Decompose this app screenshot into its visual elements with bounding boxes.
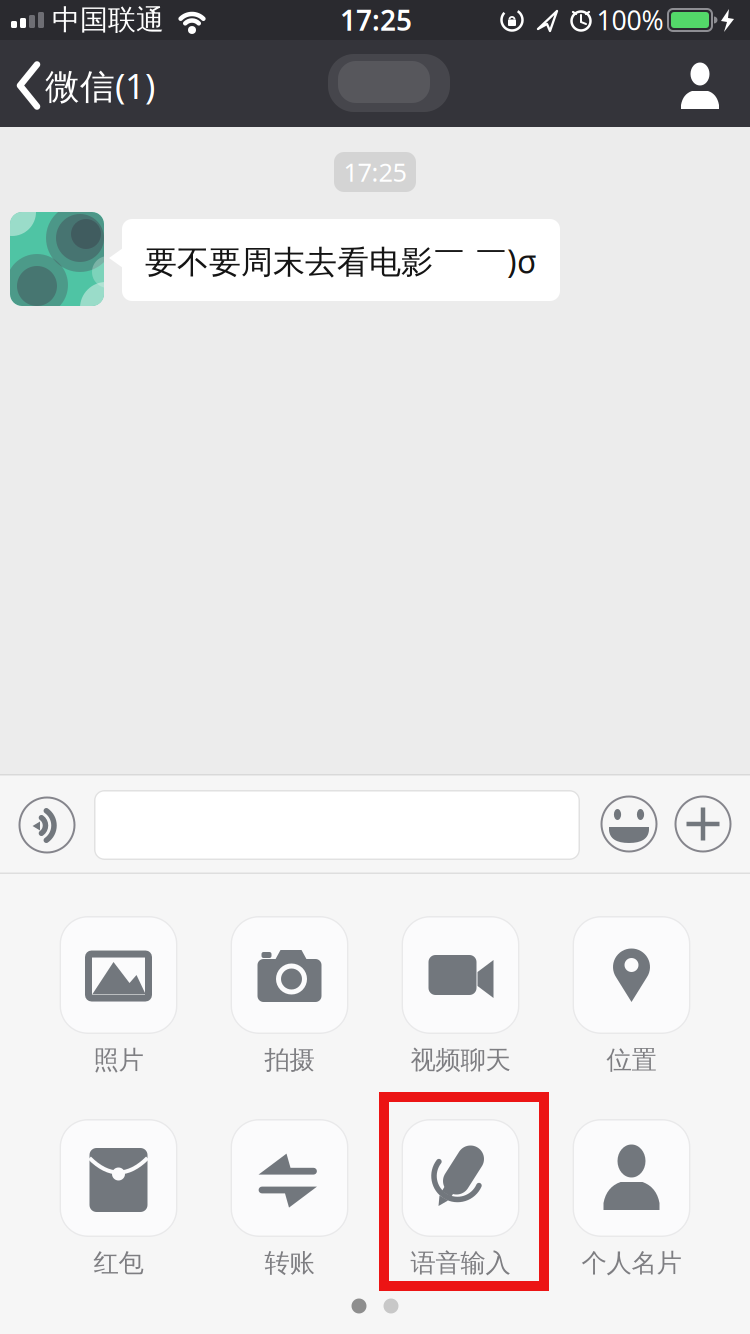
button[interactable]: 视频聊天 [375, 916, 545, 1086]
button[interactable]: 切换到按住说话 [18, 796, 76, 854]
button[interactable]: 表情 [600, 795, 658, 853]
button[interactable]: 位置 [546, 916, 716, 1086]
staticText: 语音输入 [410, 1247, 510, 1278]
button[interactable]: 更多功能 [674, 795, 732, 853]
staticText: 100% [596, 2, 663, 38]
button[interactable]: 聊天对象信息 [665, 53, 735, 119]
staticText: 17:25 [340, 1, 412, 39]
staticText: 个人名片 [581, 1247, 681, 1278]
button[interactable]: 转账 [204, 1119, 374, 1289]
button[interactable]: 返回微信 [0, 40, 170, 127]
staticText: 照片 [93, 1044, 143, 1075]
staticText: 要不要周末去看电影￣ ￣)σ [145, 240, 537, 282]
staticText: 微信(1) [45, 62, 155, 108]
button[interactable]: 照片 [33, 916, 203, 1086]
button[interactable]: 拍摄 [204, 916, 374, 1086]
staticText: 位置 [606, 1044, 656, 1075]
button[interactable]: 语音输入 [375, 1119, 545, 1289]
staticText: 红包 [93, 1247, 143, 1278]
staticText: 拍摄 [264, 1044, 314, 1075]
button[interactable]: 个人名片 [546, 1119, 716, 1289]
button[interactable]: 红包 [33, 1119, 203, 1289]
button[interactable]: 输入消息 [94, 790, 580, 860]
staticText: 中国联通 [52, 3, 164, 37]
staticText: 视频聊天 [410, 1044, 510, 1075]
staticText: 转账 [264, 1247, 314, 1278]
staticText: 17:25 [343, 155, 406, 189]
